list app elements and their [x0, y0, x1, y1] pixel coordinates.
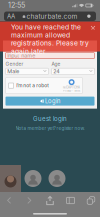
- button[interactable]: Bookmarks: [63, 194, 77, 206]
- staticText: Age: [51, 61, 60, 67]
- button[interactable]: Back: [2, 194, 16, 206]
- staticText: Male: [7, 68, 19, 75]
- staticText: AA: [7, 12, 15, 20]
- button[interactable]: Text size: [6, 12, 15, 20]
- staticText: chaturbate.com: [26, 12, 77, 20]
- staticText: Login: [45, 98, 60, 105]
- staticText: 12:55: [8, 1, 25, 9]
- button[interactable]: Tabs: [84, 194, 98, 206]
- button[interactable]: Male: [5, 68, 48, 75]
- staticText: reCAPTCHA: [63, 86, 80, 89]
- button[interactable]: Forward: [22, 194, 36, 206]
- button[interactable]: Input name: [5, 53, 94, 59]
- button[interactable]: 24: [51, 68, 94, 75]
- staticText: You have reached the maximum allowed reg…: [11, 23, 89, 55]
- button[interactable]: Login: [5, 97, 94, 106]
- staticText: Guest login: [33, 115, 67, 122]
- button[interactable]: Share: [43, 194, 57, 206]
- staticText: Gender: [5, 61, 23, 67]
- staticText: Not a member yet? register now.: [15, 126, 84, 131]
- staticText: Username: [5, 45, 30, 51]
- button[interactable]: Dismiss: [90, 24, 97, 31]
- staticText: Privacy - Terms: [63, 89, 80, 92]
- staticText: 24: [53, 68, 59, 75]
- staticText: I'm not a robot: [16, 83, 49, 88]
- staticText: Input name: [7, 52, 35, 59]
- button[interactable]: Not a member yet? register now.: [15, 126, 84, 131]
- button[interactable]: Reload: [84, 12, 93, 20]
- button[interactable]: Guest login: [33, 115, 67, 122]
- button[interactable]: I'm not a robot: [8, 83, 14, 88]
